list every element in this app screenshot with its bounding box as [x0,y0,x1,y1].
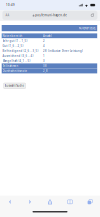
button[interactable]: Auswahl/Suche [4,83,26,89]
staticText: Durchschnittsnote [3,69,28,73]
button[interactable]: Forward [20,196,40,208]
staticText: 1 [43,54,45,58]
button[interactable]: Share [40,196,60,208]
staticText: Mangelhaft (4,1 - 5) [3,59,31,63]
staticText: Gut (1,6 - 2,5) [3,44,24,48]
staticText: Ausreichend (3,6 - 4) [3,54,34,58]
staticText: Auswahl/Suche [5,84,25,87]
staticText: 2,8 [43,69,48,73]
staticText: 2 [43,39,45,43]
button[interactable]: Reload page [87,11,97,20]
staticText: Sehr gut (1 - 1,5) [3,39,28,43]
staticText: Teilnahmen [3,64,19,68]
staticText: AA [5,13,9,17]
staticText: Befriedigend (2,6 - 3,5) [3,49,39,53]
staticText: 3 [43,59,45,63]
button[interactable]: Page settings [2,11,12,20]
staticText: Anzahl [43,34,52,38]
staticText: Notenbereich [3,34,23,38]
staticText: 28 (inklusive Ihrer Leistung) [43,49,83,53]
staticText: 4 [43,44,45,48]
staticText: NOTENSPIEGEL [79,26,96,30]
button[interactable]: Tabs [80,196,100,208]
staticText: pos.fernuni-hagen.de [35,13,67,17]
button[interactable]: Bookmarks [60,196,80,208]
staticText: 38 [43,64,47,68]
staticText: 10:49 [6,3,15,7]
button[interactable]: Back [0,196,20,208]
